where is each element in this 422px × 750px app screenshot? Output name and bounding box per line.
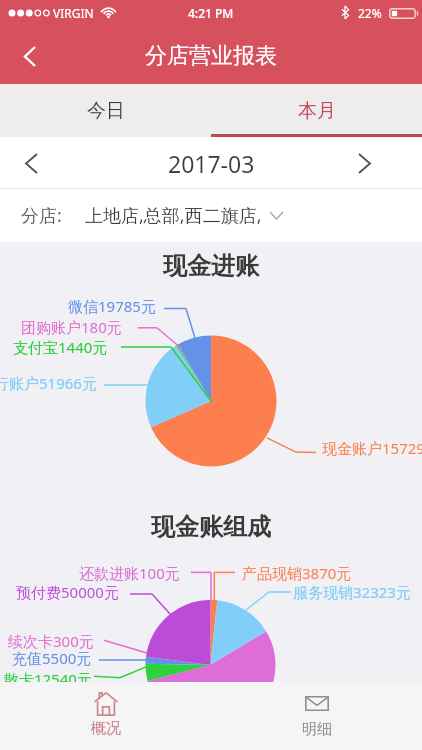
staticText: 现金账组成 bbox=[151, 512, 271, 542]
button[interactable]: Previous month bbox=[0, 137, 62, 189]
button[interactable]: 本月 bbox=[211, 84, 422, 137]
staticText: 2017-03 bbox=[168, 148, 255, 179]
staticText: 服务现销32323元 bbox=[293, 582, 411, 602]
button[interactable]: 分店: bbox=[0, 189, 422, 242]
staticText: 微信19785元 bbox=[68, 296, 156, 316]
staticText: 分店: bbox=[21, 203, 62, 228]
staticText: 今日 bbox=[87, 99, 125, 123]
staticText: 分店营业报表 bbox=[145, 42, 277, 70]
staticText: 支付宝1440元 bbox=[13, 337, 108, 357]
staticText: 产品现销3870元 bbox=[242, 563, 352, 583]
button[interactable]: Next month bbox=[332, 137, 422, 189]
staticText: 4:21 PM bbox=[188, 5, 234, 21]
staticText: 概况 bbox=[91, 719, 121, 738]
staticText: 明细 bbox=[302, 720, 332, 739]
button[interactable]: 今日 bbox=[0, 84, 211, 137]
staticText: 充值5500元 bbox=[12, 648, 92, 668]
staticText: 散卡12540元 bbox=[4, 669, 92, 689]
button[interactable]: 明细 bbox=[211, 682, 422, 750]
staticText: 上地店,总部,西二旗店, bbox=[85, 203, 262, 228]
staticText: 续次卡300元 bbox=[8, 631, 94, 651]
staticText: 22% bbox=[358, 5, 382, 21]
staticText: 现金账户157290元 bbox=[322, 438, 422, 458]
staticText: 还款进账100元 bbox=[79, 563, 180, 583]
staticText: 现金进账 bbox=[163, 251, 259, 281]
staticText: 预付费50000元 bbox=[16, 582, 119, 602]
button[interactable]: Back bbox=[0, 28, 58, 84]
staticText: VIRGIN bbox=[53, 5, 94, 21]
staticText: 团购账户180元 bbox=[21, 317, 122, 337]
button[interactable]: 概况 bbox=[0, 682, 211, 750]
staticText: 银行账户51966元 bbox=[0, 373, 97, 393]
staticText: 本月 bbox=[298, 99, 336, 123]
